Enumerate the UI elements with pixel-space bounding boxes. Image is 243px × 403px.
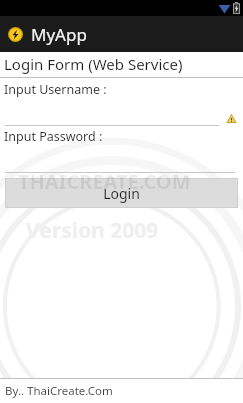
staticText: MyApp [31,23,87,46]
staticText: Input Password : [4,128,103,145]
button[interactable]: Warning [0,98,243,126]
button[interactable] [0,145,243,173]
staticText: By.. ThaiCreate.Com [5,383,113,399]
staticText: Version 2009 [26,216,159,245]
staticText: Login Form (Web Service) [4,54,183,74]
staticText: THAICREATE.COM [18,168,191,195]
button[interactable]: Login [6,179,237,207]
staticText: Input Username : [4,81,107,98]
other: Warning [226,113,237,124]
staticText: Login [103,184,140,203]
